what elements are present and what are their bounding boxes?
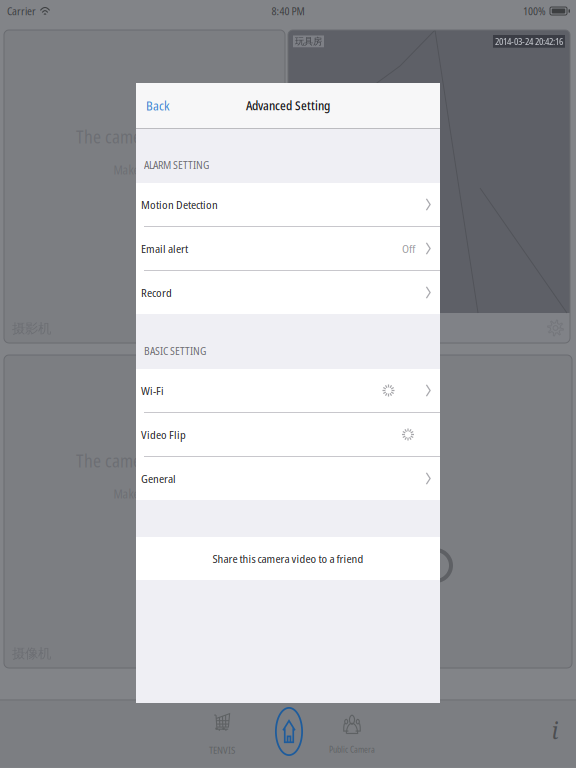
staticText: 摄像机 xyxy=(12,645,51,662)
staticText: Motion Detection xyxy=(141,197,218,212)
button[interactable]: TENVIS xyxy=(193,710,251,758)
staticText: 摄影机 xyxy=(12,320,51,337)
button[interactable]: Public Camera xyxy=(318,708,386,760)
button[interactable]: Video Flip xyxy=(136,413,440,456)
staticText: TENVIS xyxy=(209,743,235,757)
staticText: i xyxy=(551,715,558,746)
staticText: Make sure your camera has power and xyxy=(113,486,294,502)
staticText: Public Camera xyxy=(329,744,375,755)
staticText: Record xyxy=(141,285,172,300)
staticText: The camera 摄像机 is not connected. xyxy=(76,449,332,473)
staticText: Advanced Setting xyxy=(246,97,330,114)
button[interactable]: Motion Detection xyxy=(136,183,440,226)
staticText: 玩具房 xyxy=(295,35,322,47)
button[interactable]: Info xyxy=(542,718,568,742)
staticText: Email alert xyxy=(141,241,188,256)
staticText: General xyxy=(141,471,176,486)
staticText: Back xyxy=(146,97,170,114)
staticText: Share this camera video to a friend xyxy=(212,551,363,566)
button[interactable]: Back xyxy=(136,83,194,128)
button[interactable]: Wi-Fi xyxy=(136,369,440,412)
staticText: Make sure your camera has power and xyxy=(113,162,294,178)
staticText: BASIC SETTING xyxy=(144,343,206,358)
button[interactable]: Share this camera video to a friend xyxy=(136,537,440,580)
staticText: 100% xyxy=(523,4,546,18)
staticText: The camera 摄影机 is not connected. xyxy=(76,125,332,149)
staticText: 8:40 PM xyxy=(271,4,304,18)
staticText: ALARM SETTING xyxy=(144,157,209,172)
staticText: Off xyxy=(402,241,415,256)
staticText: is connected to a network. xyxy=(143,180,264,196)
staticText: Video Flip xyxy=(141,427,186,442)
button[interactable]: General xyxy=(136,457,440,500)
staticText: 2014-03-24 20:42:16 xyxy=(495,35,563,48)
staticText: Carrier xyxy=(7,4,36,18)
button[interactable]: Record xyxy=(136,271,440,314)
button[interactable]: Home xyxy=(265,705,313,757)
staticText: Wi-Fi xyxy=(141,383,164,398)
button[interactable]: Email alert xyxy=(136,227,440,270)
